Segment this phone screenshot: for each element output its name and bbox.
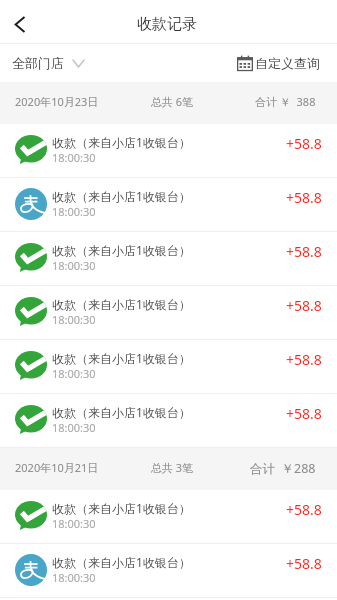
staticText: +58.8 <box>286 134 322 153</box>
button[interactable]: 收款（来自小店1收银台） <box>0 340 337 394</box>
staticText: 18:00:30 <box>52 366 96 381</box>
staticText: 18:00:30 <box>52 420 96 435</box>
staticText: +58.8 <box>286 500 322 519</box>
button[interactable]: Back <box>0 0 38 44</box>
staticText: 总共 6笔 <box>151 94 194 109</box>
staticText: 收款（来自小店1收银台） <box>52 554 191 570</box>
staticText: +58.8 <box>286 188 322 207</box>
staticText: 2020年10月23日 <box>15 94 99 109</box>
staticText: 收款（来自小店1收银台） <box>52 242 191 258</box>
button[interactable]: 收款（来自小店1收银台） <box>0 490 337 544</box>
staticText: 收款（来自小店1收银台） <box>52 188 191 204</box>
staticText: 18:00:30 <box>52 258 96 273</box>
staticText: +58.8 <box>286 296 322 315</box>
staticText: 收款（来自小店1收银台） <box>52 500 191 516</box>
staticText: 收款（来自小店1收银台） <box>52 404 191 420</box>
staticText: +58.8 <box>286 242 322 261</box>
button[interactable]: 全部门店 <box>12 55 84 71</box>
staticText: 18:00:30 <box>52 312 96 327</box>
staticText: 18:00:30 <box>52 150 96 165</box>
staticText: 收款记录 <box>137 15 197 34</box>
staticText: 自定义查询 <box>255 55 320 71</box>
button[interactable]: 收款（来自小店1收银台） <box>0 124 337 178</box>
staticText: 18:00:30 <box>52 516 96 531</box>
button[interactable]: 收款（来自小店1收银台） <box>0 286 337 340</box>
staticText: 2020年10月21日 <box>15 460 99 475</box>
staticText: 全部门店 <box>12 55 64 71</box>
button[interactable]: 收款（来自小店1收银台） <box>0 178 337 232</box>
staticText: +58.8 <box>286 350 322 369</box>
staticText: 合计 ￥ 388 <box>255 94 316 109</box>
button[interactable]: 收款（来自小店1收银台） <box>0 544 337 598</box>
staticText: 18:00:30 <box>52 570 96 585</box>
staticText: 收款（来自小店1收银台） <box>52 350 191 366</box>
button[interactable]: 自定义查询 <box>237 55 320 71</box>
staticText: 总共 3笔 <box>151 460 194 475</box>
staticText: 收款（来自小店1收银台） <box>52 296 191 312</box>
staticText: 合计 ￥288 <box>250 460 316 477</box>
staticText: +58.8 <box>286 554 322 573</box>
staticText: 收款（来自小店1收银台） <box>52 134 191 150</box>
staticText: 18:00:30 <box>52 204 96 219</box>
staticText: +58.8 <box>286 404 322 423</box>
button[interactable]: 收款（来自小店1收银台） <box>0 394 337 448</box>
button[interactable]: 收款（来自小店1收银台） <box>0 232 337 286</box>
